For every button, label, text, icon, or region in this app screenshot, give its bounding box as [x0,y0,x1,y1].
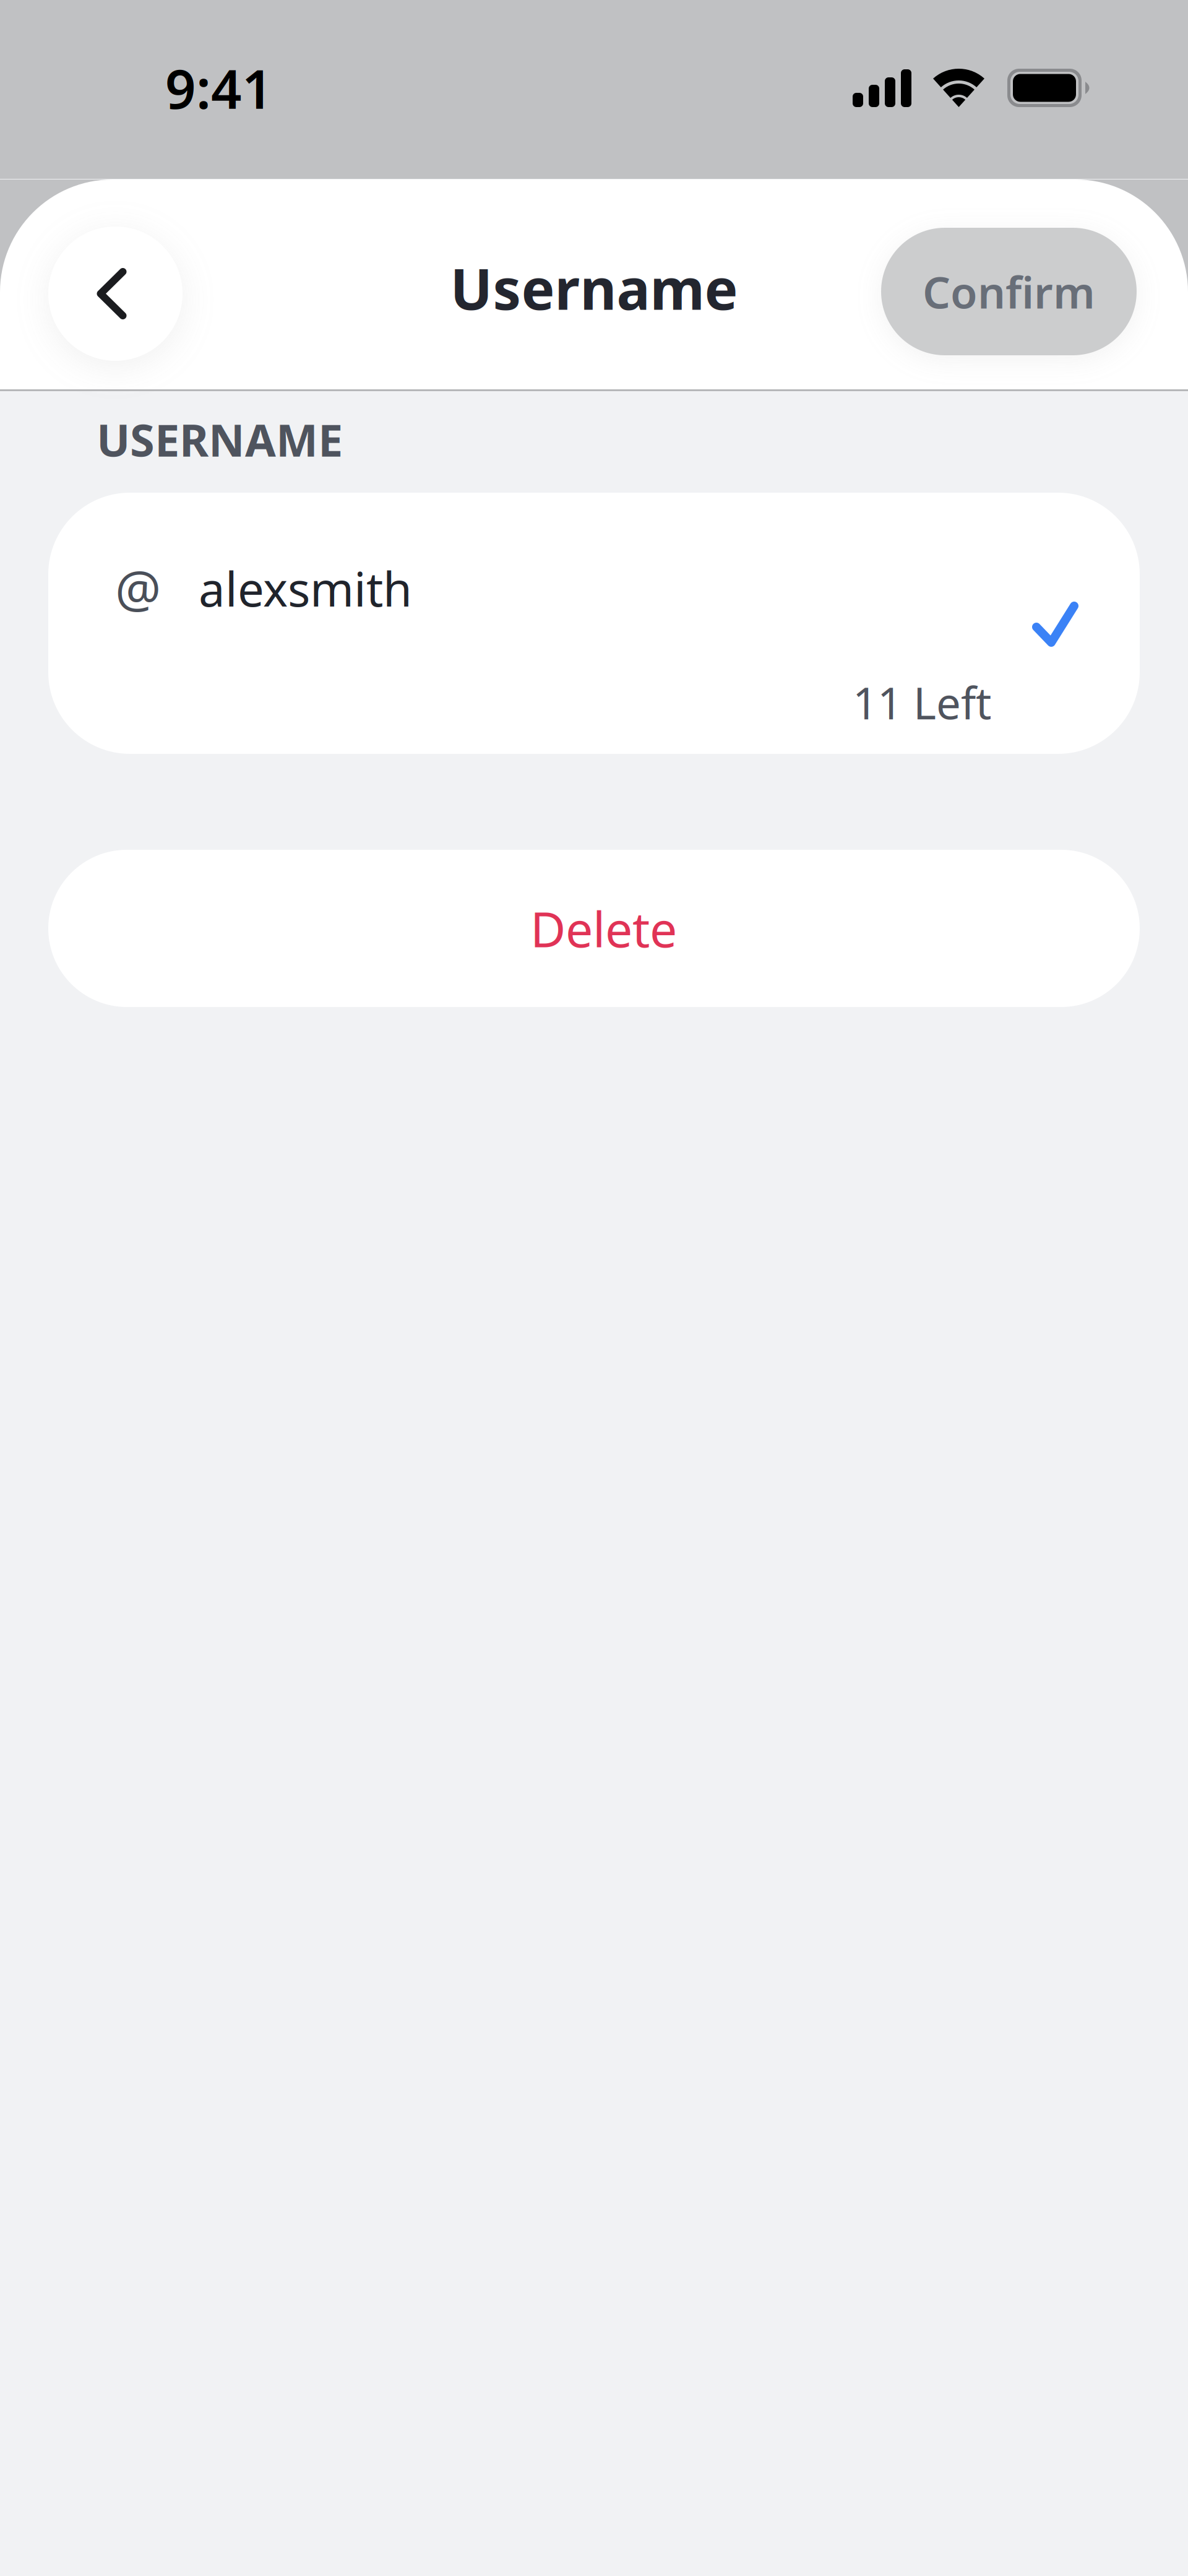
staticText: @ [115,554,161,622]
button[interactable]: Delete [48,850,1140,1007]
staticText: 9:41 [165,52,273,124]
staticText: 11 Left [853,673,992,731]
staticText: Confirm [923,262,1095,321]
button[interactable]: Confirm [881,228,1137,355]
staticText: alexsmith [199,557,412,619]
button[interactable]: Back [48,227,183,361]
staticText: Username [450,251,738,325]
staticText: USERNAME [97,410,343,469]
button[interactable]: @ [48,493,1140,754]
staticText: Delete [530,896,677,961]
